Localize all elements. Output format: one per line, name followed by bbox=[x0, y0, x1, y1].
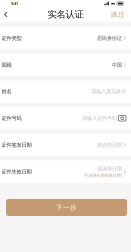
staticText: (不选择长期有效日期) bbox=[84, 173, 122, 178]
staticText: 证件签发日期 bbox=[1, 142, 31, 148]
staticText: 下一步 bbox=[56, 203, 77, 212]
staticText: 国籍 bbox=[1, 62, 11, 68]
staticText: 跳过 bbox=[111, 10, 125, 19]
button[interactable]: 跳过 bbox=[108, 8, 128, 21]
staticText: 实名认证 bbox=[47, 9, 83, 20]
staticText: 居民身份证 bbox=[97, 35, 122, 41]
staticText: 中国 bbox=[112, 62, 122, 68]
staticText: 证件类型 bbox=[1, 35, 21, 41]
button[interactable]: 证件号码 bbox=[0, 107, 131, 129]
button[interactable]: 证件类型 bbox=[0, 27, 131, 49]
staticText: 请选择日期 bbox=[97, 142, 122, 148]
button[interactable]: 国籍 bbox=[0, 54, 131, 76]
staticText: 请选择日期 bbox=[97, 165, 122, 172]
button[interactable]: 证件失效日期 bbox=[0, 160, 131, 183]
button[interactable]: 姓名 bbox=[0, 80, 131, 103]
button[interactable]: Back bbox=[0, 9, 11, 20]
staticText: 请输入证件号码 bbox=[82, 115, 117, 122]
staticText: 证件失效日期 bbox=[1, 168, 31, 175]
button[interactable]: 下一步 bbox=[6, 199, 127, 216]
staticText: 证件号码 bbox=[1, 115, 21, 122]
button[interactable]: 证件签发日期 bbox=[0, 134, 131, 156]
staticText: 姓名 bbox=[1, 88, 11, 95]
staticText: 请输入真实姓名 bbox=[91, 88, 126, 95]
staticText: 9:41 bbox=[11, 1, 18, 6]
